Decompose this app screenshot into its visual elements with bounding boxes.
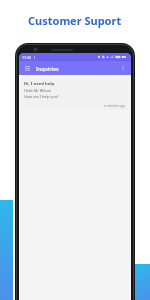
staticText: How can I help you? [24, 94, 59, 99]
staticText: Customer Suport [28, 13, 122, 28]
button[interactable]: Open navigation menu [23, 64, 31, 72]
staticText: 11:36 [22, 55, 31, 60]
staticText: a minute ago [104, 103, 126, 108]
staticText: Inquiries [36, 65, 59, 72]
staticText: Hello Mr Wilson [24, 88, 52, 93]
button[interactable]: More options [119, 64, 127, 72]
staticText: Hi, I need help. [24, 81, 56, 87]
button[interactable]: Hi, I need help. [21, 78, 129, 110]
